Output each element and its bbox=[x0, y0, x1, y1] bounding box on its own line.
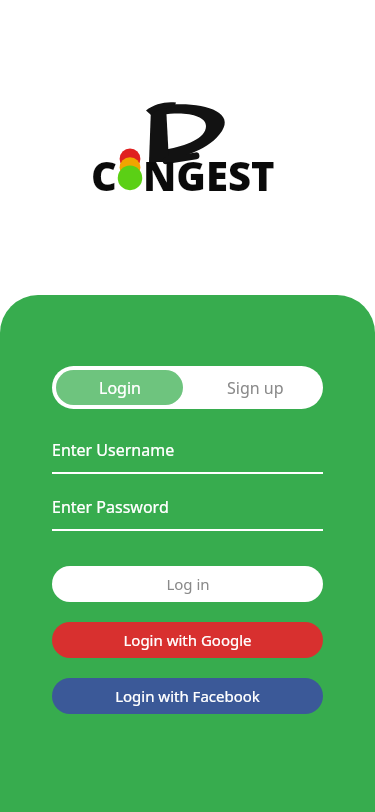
button[interactable]: Login bbox=[56, 370, 183, 405]
staticText: NGEST bbox=[143, 148, 275, 202]
staticText: Enter Password bbox=[52, 496, 169, 518]
button[interactable]: Enter Username bbox=[52, 439, 323, 474]
staticText: C bbox=[91, 148, 117, 202]
staticText: Login with Facebook bbox=[115, 686, 260, 706]
staticText: Login with Google bbox=[123, 630, 252, 650]
button[interactable]: Login with Facebook bbox=[52, 678, 323, 714]
staticText: Login bbox=[99, 377, 141, 399]
button[interactable]: Sign up bbox=[187, 366, 323, 409]
button[interactable]: Enter Password bbox=[52, 496, 323, 531]
button[interactable]: Login with Google bbox=[52, 622, 323, 658]
button[interactable]: Log in bbox=[52, 566, 323, 602]
staticText: Enter Username bbox=[52, 439, 175, 461]
staticText: Sign up bbox=[227, 377, 284, 399]
staticText: Log in bbox=[166, 574, 210, 594]
